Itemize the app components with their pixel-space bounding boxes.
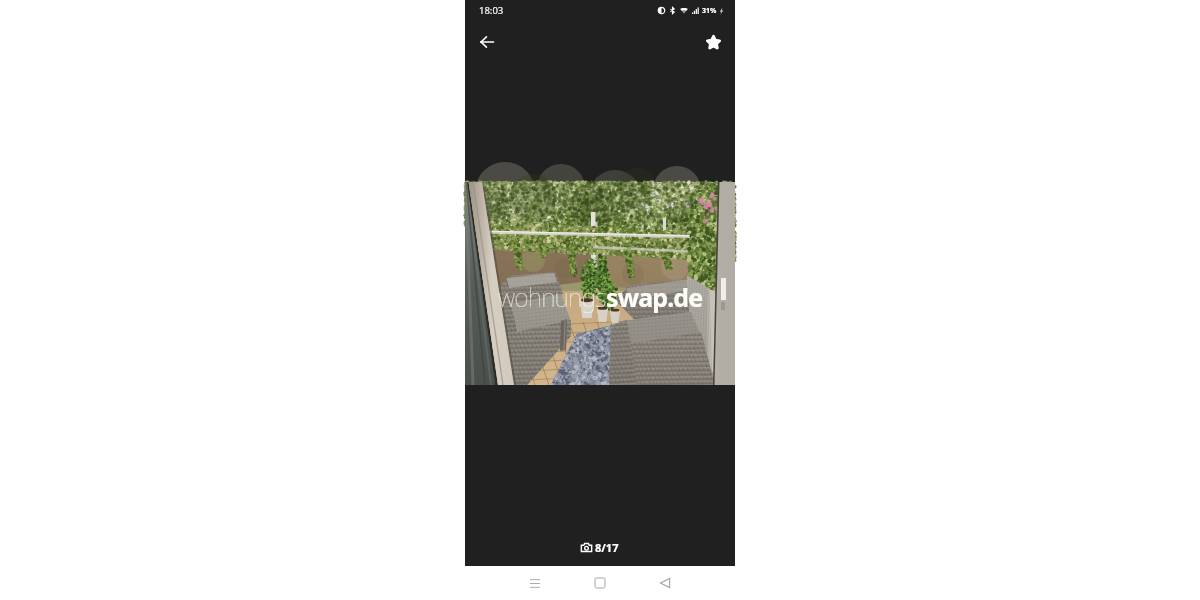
- button[interactable]: Recent apps: [524, 572, 546, 594]
- staticText: swap.de: [606, 280, 703, 314]
- button[interactable]: Home: [589, 572, 611, 594]
- button[interactable]: Favorite: [699, 28, 727, 56]
- staticText: 18:03: [479, 4, 504, 17]
- button[interactable]: Back: [473, 28, 501, 56]
- button[interactable]: Photo 8 of 17: [581, 540, 619, 555]
- staticText: 8/17: [595, 540, 619, 555]
- button[interactable]: Back: [654, 572, 676, 594]
- staticText: wohnungs: [498, 280, 606, 314]
- staticText: 31%: [702, 6, 717, 16]
